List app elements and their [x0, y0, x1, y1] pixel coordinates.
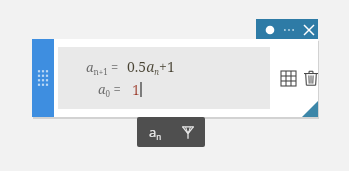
staticText: 1	[132, 80, 140, 99]
staticText: 0.5an+1	[127, 57, 175, 77]
button[interactable]: Table	[276, 66, 300, 90]
button[interactable]: Resize	[302, 101, 318, 117]
button[interactable]: Sequence tools	[175, 118, 201, 146]
staticText: an+1 =	[86, 58, 122, 77]
button[interactable]: Drag handle	[32, 39, 54, 117]
button[interactable]: an	[141, 118, 169, 146]
button[interactable]: Status	[263, 23, 277, 37]
staticText: an	[149, 123, 162, 142]
button[interactable]: Close	[300, 20, 318, 40]
button[interactable]: an+1 =	[58, 47, 270, 109]
staticText: a0 =	[98, 80, 125, 99]
button[interactable]: Delete	[304, 66, 318, 90]
button[interactable]: More options	[281, 20, 297, 40]
